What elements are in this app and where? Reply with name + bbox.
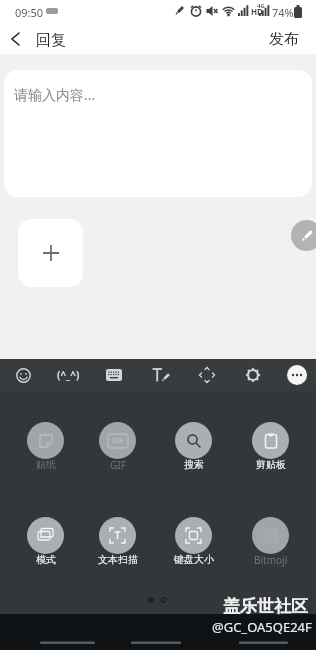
staticText: 74% — [272, 5, 294, 20]
button[interactable]: 剪贴板 — [233, 417, 308, 489]
staticText: GIF — [110, 458, 126, 472]
button[interactable] — [18, 219, 83, 287]
button[interactable] — [11, 363, 35, 387]
button[interactable] — [291, 220, 316, 251]
staticText: (^_^) — [57, 368, 80, 382]
button[interactable] — [4, 27, 28, 51]
button[interactable] — [147, 363, 175, 387]
staticText: @GC_OA5QE24F — [212, 618, 312, 636]
staticText: 盖乐世社区 — [223, 596, 308, 617]
button[interactable]: GIF — [80, 417, 155, 489]
staticText: 回复 — [36, 31, 66, 50]
button[interactable]: (^_^) — [50, 363, 86, 387]
button[interactable] — [102, 363, 126, 387]
staticText: 键盘大小 — [174, 553, 214, 566]
staticText: HD — [251, 6, 263, 17]
button[interactable]: 贴纸 — [8, 417, 83, 489]
button[interactable]: Bitmoji — [233, 512, 308, 584]
button[interactable]: 搜索 — [156, 417, 231, 489]
staticText: 4G — [257, 2, 265, 10]
staticText: 搜索 — [184, 458, 204, 471]
staticText: 09:50 — [15, 5, 44, 20]
button[interactable]: 键盘大小 — [156, 512, 231, 584]
staticText: 发布 — [269, 30, 299, 49]
staticText: 剪贴板 — [256, 458, 286, 471]
button[interactable]: 请输入内容... — [4, 70, 312, 197]
button[interactable]: 文本扫描 — [80, 512, 155, 584]
button[interactable]: 发布 — [261, 27, 307, 51]
button[interactable] — [287, 365, 307, 385]
staticText: 模式 — [36, 553, 56, 566]
staticText: GIF — [112, 436, 124, 446]
button[interactable] — [195, 363, 219, 387]
staticText: 文本扫描 — [98, 553, 138, 566]
button[interactable]: 模式 — [8, 512, 83, 584]
button[interactable] — [241, 363, 265, 387]
staticText: 贴纸 — [36, 458, 56, 471]
staticText: Bitmoji — [254, 553, 288, 567]
staticText: 请输入内容... — [14, 85, 96, 104]
